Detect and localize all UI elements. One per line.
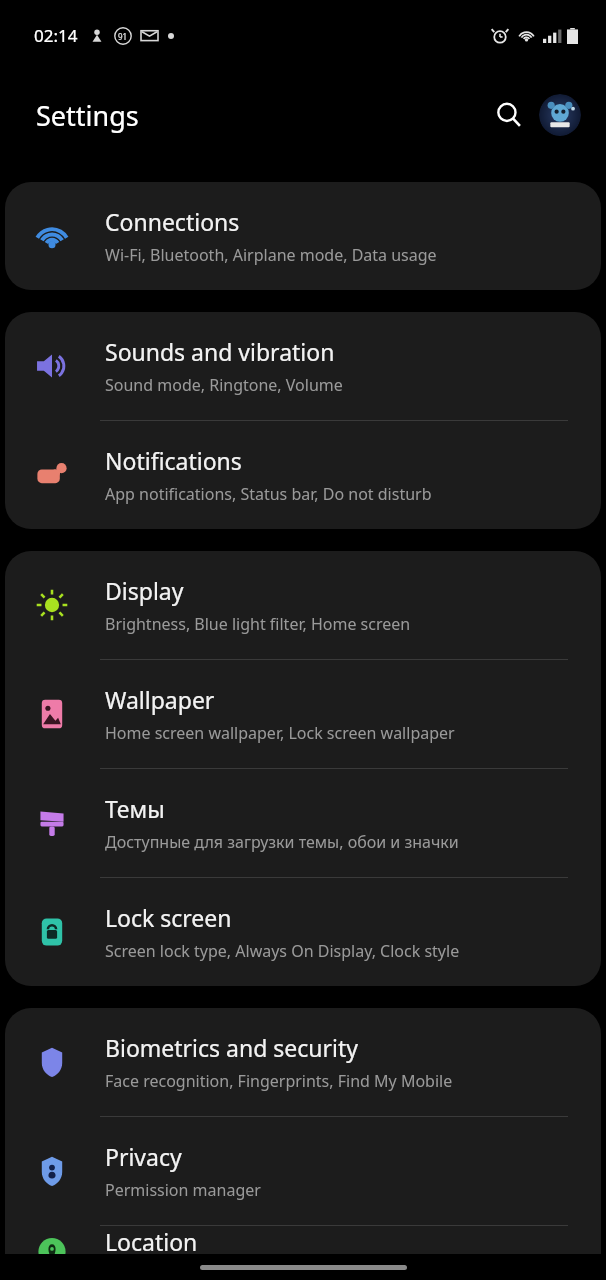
staticText: Display: [105, 575, 184, 606]
button[interactable]: Sounds and vibration: [5, 312, 601, 420]
button[interactable]: Notifications: [5, 421, 601, 529]
staticText: Sound mode, Ringtone, Volume: [105, 374, 343, 396]
staticText: Permission manager: [105, 1179, 261, 1201]
staticText: Location: [105, 1226, 198, 1257]
staticText: Lock screen: [105, 902, 232, 933]
staticText: Sounds and vibration: [105, 336, 335, 367]
button[interactable]: Privacy: [5, 1117, 601, 1225]
staticText: Connections: [105, 206, 240, 237]
staticText: Face recognition, Fingerprints, Find My …: [105, 1070, 453, 1092]
button[interactable]: Search: [485, 91, 533, 139]
button[interactable]: Lock screen: [5, 878, 601, 986]
staticText: Notifications: [105, 445, 242, 476]
button[interactable]: Account: [539, 94, 581, 136]
staticText: Доступные для загрузки темы, обои и знач…: [105, 831, 459, 853]
button[interactable]: Display: [5, 551, 601, 659]
staticText: App notifications, Status bar, Do not di…: [105, 483, 432, 505]
staticText: 02:14: [34, 24, 78, 47]
staticText: Location requests, App permissions: [105, 1264, 373, 1280]
staticText: Brightness, Blue light filter, Home scre…: [105, 613, 411, 635]
button[interactable]: Connections: [5, 182, 601, 290]
button[interactable]: Location: [5, 1226, 601, 1280]
staticText: Home screen wallpaper, Lock screen wallp…: [105, 722, 455, 744]
button[interactable]: Biometrics and security: [5, 1008, 601, 1116]
button[interactable]: Wallpaper: [5, 660, 601, 768]
staticText: Biometrics and security: [105, 1032, 359, 1063]
button[interactable]: Темы: [5, 769, 601, 877]
staticText: Screen lock type, Always On Display, Clo…: [105, 940, 460, 962]
staticText: Settings: [36, 97, 139, 134]
staticText: Темы: [105, 793, 165, 824]
staticText: Privacy: [105, 1141, 182, 1172]
staticText: Wallpaper: [105, 684, 215, 715]
staticText: Wi-Fi, Bluetooth, Airplane mode, Data us…: [105, 244, 437, 266]
staticText: 91: [118, 31, 128, 42]
